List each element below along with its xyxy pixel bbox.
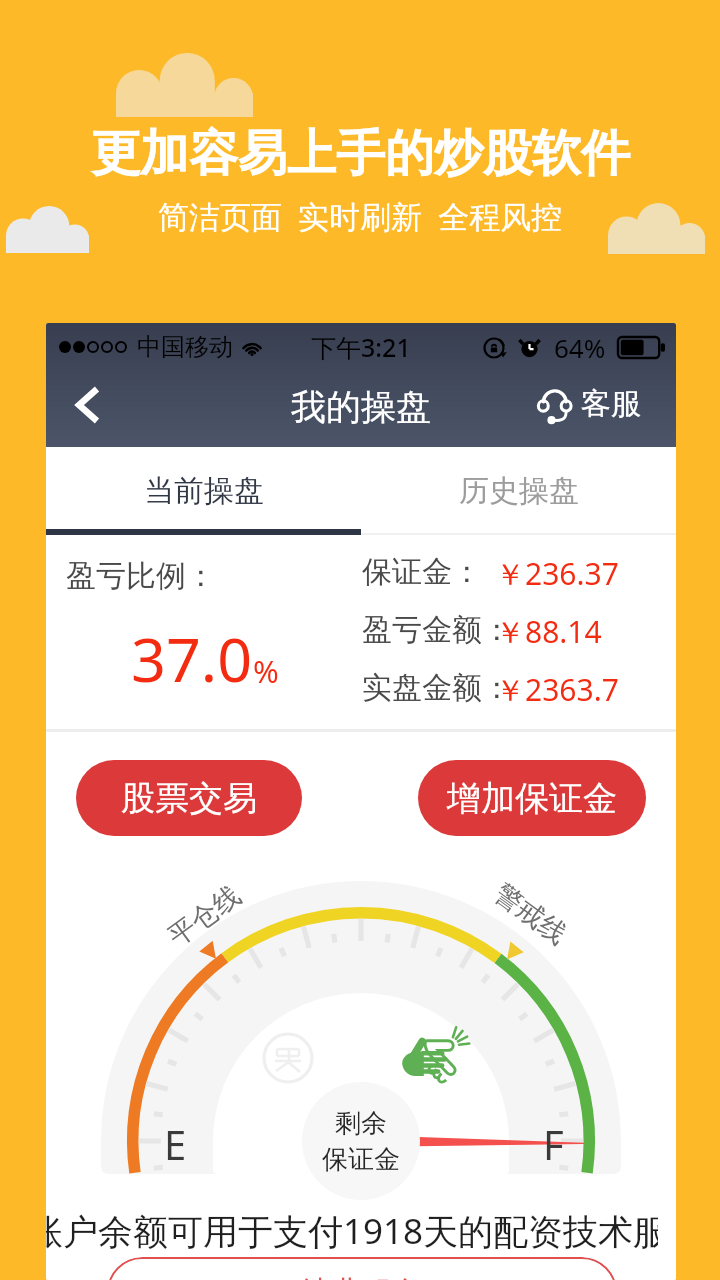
staticText: 盈亏比例： <box>66 557 216 595</box>
staticText: 续费服务 <box>300 1273 424 1280</box>
staticText: 更加容易上手的炒股软件 <box>91 123 630 185</box>
staticText: 盈亏金额： <box>362 611 512 649</box>
staticText: 37.0 <box>131 617 253 700</box>
staticText: 平仓线 <box>162 878 247 953</box>
staticText: 剩余 <box>335 1107 387 1140</box>
staticText: 账户余额可用于支付1918天的配资技术服务费 <box>46 1207 658 1255</box>
staticText: 下午3:21 <box>311 330 411 364</box>
button[interactable]: 续费服务 <box>107 1257 617 1280</box>
button[interactable]: 当前操盘 <box>46 447 361 535</box>
staticText: 中国移动 <box>137 332 233 362</box>
staticText: 客服 <box>581 385 641 423</box>
staticText: 增加保证金 <box>447 777 617 820</box>
button[interactable]: 历史操盘 <box>361 447 676 535</box>
button[interactable]: 增加保证金 <box>418 760 646 836</box>
staticText: 64% <box>554 330 606 365</box>
staticText: ￥236.37 <box>495 553 619 591</box>
staticText: 保证金： <box>362 553 482 591</box>
staticText: 股票交易 <box>121 777 257 820</box>
staticText: ￥2363.7 <box>495 669 619 707</box>
staticText: F <box>543 1117 564 1171</box>
staticText: 当前操盘 <box>144 472 264 510</box>
staticText: 保证金 <box>322 1143 400 1176</box>
button[interactable]: 股票交易 <box>76 760 302 836</box>
staticText: 警戒线 <box>488 876 573 951</box>
staticText: % <box>253 650 279 692</box>
staticText: ￥88.14 <box>495 611 602 649</box>
staticText: 我的操盘 <box>291 385 431 429</box>
staticText: E <box>164 1117 187 1171</box>
button[interactable]: 客服 <box>538 385 641 423</box>
staticText: 实盘金额： <box>362 669 512 707</box>
button[interactable]: Back <box>58 377 118 433</box>
staticText: 历史操盘 <box>459 472 579 510</box>
staticText: 简洁页面 实时刷新 全程风控 <box>158 195 563 237</box>
